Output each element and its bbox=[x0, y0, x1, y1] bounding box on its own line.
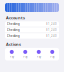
staticText: Pay bbox=[37, 55, 41, 58]
staticText: Checking bbox=[7, 22, 20, 26]
button[interactable]: Checking bbox=[5, 33, 59, 39]
staticText: Actions bbox=[6, 42, 21, 47]
staticText: $1,240 bbox=[46, 28, 57, 32]
button[interactable]: Pay bbox=[45, 50, 59, 58]
staticText: Checking bbox=[7, 28, 20, 32]
staticText: Pay bbox=[50, 55, 54, 58]
staticText: Pay bbox=[23, 55, 27, 58]
button[interactable]: Checking bbox=[5, 21, 59, 27]
staticText: Pay bbox=[10, 55, 14, 58]
staticText: $1,240 bbox=[46, 34, 57, 38]
button[interactable]: Checking bbox=[5, 27, 59, 33]
staticText: Checking bbox=[7, 34, 20, 38]
staticText: $1,240 bbox=[46, 22, 57, 26]
button[interactable]: Pay bbox=[18, 50, 32, 58]
button[interactable]: Pay bbox=[5, 50, 18, 58]
staticText: Accounts bbox=[6, 15, 25, 20]
button[interactable]: Pay bbox=[32, 50, 45, 58]
